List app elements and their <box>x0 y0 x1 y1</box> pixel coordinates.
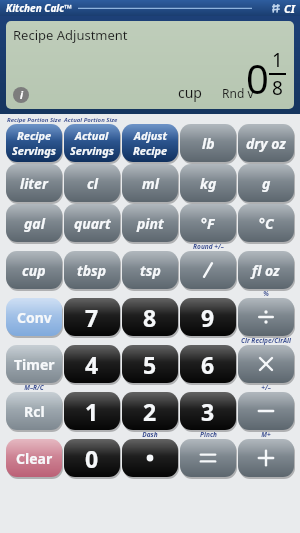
button[interactable]: 4 <box>64 345 120 383</box>
staticText: dry oz <box>246 134 286 153</box>
staticText: Conv <box>17 308 52 327</box>
staticText: gal <box>24 214 45 233</box>
staticText: Kitchen Calc™ <box>6 1 72 15</box>
staticText: cl <box>87 174 98 193</box>
button[interactable]: Decimal point <box>122 439 178 477</box>
staticText: cup <box>22 261 46 280</box>
staticText: i <box>20 88 23 102</box>
staticText: M–R/C <box>24 383 44 392</box>
button[interactable]: liter <box>6 164 62 202</box>
button[interactable]: Conv <box>6 298 62 336</box>
button[interactable]: Equals <box>180 439 236 477</box>
button[interactable]: g <box>238 164 294 202</box>
staticText: 7 <box>85 302 99 333</box>
staticText: °C <box>259 214 274 233</box>
button[interactable]: Divide <box>238 298 294 336</box>
button[interactable]: fl oz <box>238 251 294 289</box>
button[interactable]: Rcl <box>6 392 62 430</box>
staticText: 8 <box>272 75 283 101</box>
staticText: Actual Portion Size <box>64 116 118 124</box>
button[interactable]: kg <box>180 164 236 202</box>
staticText: Recipe Portion Size <box>7 116 62 124</box>
staticText: kg <box>200 174 217 193</box>
staticText: Servings <box>12 143 56 158</box>
button[interactable]: 3 <box>180 392 236 430</box>
staticText: 1 <box>85 396 99 427</box>
button[interactable]: dry oz <box>238 124 294 162</box>
staticText: Servings <box>70 143 114 158</box>
button[interactable]: ml <box>122 164 178 202</box>
button[interactable]: quart <box>64 204 120 242</box>
staticText: 2 <box>143 396 157 427</box>
button[interactable]: Info <box>13 87 29 103</box>
staticText: 5 <box>143 349 157 380</box>
button[interactable]: 9 <box>180 298 236 336</box>
staticText: 3 <box>201 396 215 427</box>
button[interactable]: 6 <box>180 345 236 383</box>
staticText: Rcl <box>24 402 45 421</box>
button[interactable]: Adjust <box>122 124 178 162</box>
button[interactable]: 7 <box>64 298 120 336</box>
staticText: 4 <box>85 349 99 380</box>
button[interactable]: Multiply <box>238 345 294 383</box>
staticText: tbsp <box>77 261 107 280</box>
button[interactable]: 5 <box>122 345 178 383</box>
button[interactable]: cup <box>6 251 62 289</box>
button[interactable]: 2 <box>122 392 178 430</box>
staticText: 6 <box>201 349 215 380</box>
staticText: Rnd v <box>222 85 254 101</box>
staticText: quart <box>74 214 111 233</box>
button[interactable]: 0 <box>64 439 120 477</box>
staticText: Actual <box>75 128 109 143</box>
staticText: 9 <box>201 302 215 333</box>
staticText: +/– <box>261 383 271 392</box>
button[interactable]: tsp <box>122 251 178 289</box>
staticText: Pinch <box>200 430 217 439</box>
button[interactable]: Clear <box>6 439 62 477</box>
staticText: Clr Recipe/ClrAll <box>241 336 291 345</box>
staticText: Clear <box>16 449 53 468</box>
button[interactable]: Recipe <box>6 124 62 162</box>
staticText: fl oz <box>252 261 280 280</box>
staticText: M+ <box>261 430 271 439</box>
staticText: % <box>263 289 269 298</box>
button[interactable]: Timer <box>6 345 62 383</box>
staticText: g <box>262 174 271 193</box>
staticText: CI <box>284 1 295 16</box>
staticText: lb <box>202 134 215 153</box>
staticText: °F <box>201 214 215 233</box>
staticText: 8 <box>143 302 157 333</box>
staticText: Dash <box>142 430 158 439</box>
button[interactable]: 1 <box>64 392 120 430</box>
staticText: 0 <box>246 51 269 105</box>
staticText: liter <box>20 174 48 193</box>
button[interactable]: pint <box>122 204 178 242</box>
staticText: 0 <box>85 443 99 474</box>
button[interactable]: lb <box>180 124 236 162</box>
button[interactable]: Actual <box>64 124 120 162</box>
staticText: Adjust <box>134 128 168 143</box>
button[interactable]: gal <box>6 204 62 242</box>
button[interactable]: °C <box>238 204 294 242</box>
staticText: 1 <box>272 47 283 73</box>
staticText: Recipe <box>17 128 52 143</box>
staticText: Timer <box>14 355 55 374</box>
staticText: Recipe Adjustment <box>13 26 128 44</box>
button[interactable]: °F <box>180 204 236 242</box>
button[interactable]: cl <box>64 164 120 202</box>
button[interactable]: Plus <box>238 439 294 477</box>
staticText: Round +/– <box>193 242 224 251</box>
staticText: pint <box>137 214 164 233</box>
button[interactable]: Fraction slash <box>180 251 236 289</box>
staticText: cup <box>178 83 202 102</box>
button[interactable]: tbsp <box>64 251 120 289</box>
button[interactable]: Minus <box>238 392 294 430</box>
button[interactable]: 8 <box>122 298 178 336</box>
staticText: tsp <box>140 261 161 280</box>
staticText: ml <box>142 174 159 193</box>
staticText: Recipe <box>133 143 168 158</box>
